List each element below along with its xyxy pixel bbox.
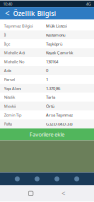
staticText: Mevkii bbox=[4, 103, 16, 109]
staticText: 1 bbox=[46, 77, 48, 82]
staticText: Arsa Taşınmaz bbox=[46, 112, 73, 118]
staticText: Örtü bbox=[46, 103, 54, 109]
staticText: Yapı Alanı bbox=[4, 86, 21, 91]
staticText: Mahalle Adı bbox=[4, 50, 25, 55]
staticText: Parsel bbox=[4, 77, 15, 82]
staticText: 0 bbox=[46, 68, 48, 73]
staticText: İlçe bbox=[4, 41, 10, 46]
staticText: 10:40 bbox=[3, 1, 12, 6]
staticText: 130164 bbox=[46, 59, 58, 64]
button[interactable]: Favorilere ekle bbox=[0, 128, 94, 140]
staticText: Pafta bbox=[4, 121, 12, 127]
staticText: Zemin Tip bbox=[4, 112, 21, 118]
staticText: Nitelik bbox=[4, 95, 15, 100]
staticText: Mülk Listesi bbox=[46, 23, 67, 29]
staticText: 1.370,86 bbox=[46, 86, 60, 91]
staticText: Taşköprü bbox=[46, 41, 62, 46]
staticText: Kastamonu bbox=[46, 32, 65, 38]
staticText: Kayalı Çamırlık bbox=[46, 50, 73, 55]
staticText: Özellik Bilgisi bbox=[13, 9, 56, 18]
staticText: < bbox=[61, 189, 65, 198]
staticText: İl bbox=[4, 32, 6, 38]
staticText: Mahalle No bbox=[4, 59, 24, 64]
staticText: < bbox=[5, 8, 10, 19]
button[interactable]: Back bbox=[2, 7, 13, 20]
staticText: 4G bbox=[86, 1, 91, 6]
staticText: Favorilere ekle bbox=[29, 131, 64, 138]
staticText: Taşınmaz Bilgisi bbox=[4, 23, 33, 29]
staticText: Tarla bbox=[46, 95, 55, 100]
staticText: G32-D-04-D-3-B bbox=[46, 121, 73, 127]
staticText: Ada bbox=[4, 68, 11, 73]
